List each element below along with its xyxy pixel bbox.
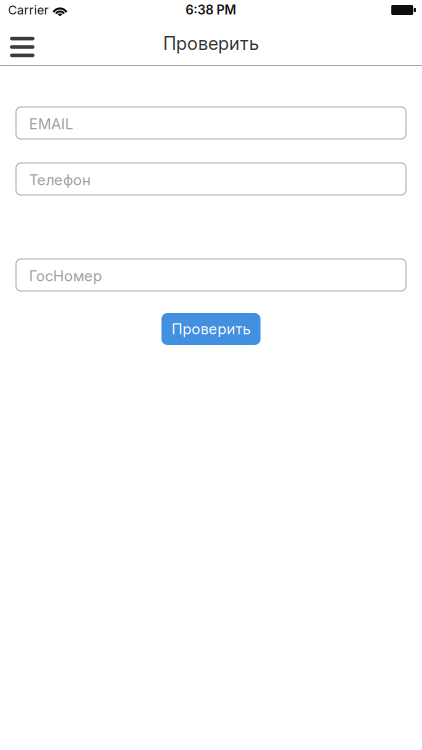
- button[interactable]: EMAIL: [16, 107, 406, 139]
- button[interactable]: Проверить: [161, 313, 260, 345]
- staticText: Телефон: [29, 171, 91, 189]
- staticText: Проверить: [171, 320, 250, 338]
- button[interactable]: ГосНомер: [16, 259, 406, 291]
- staticText: Carrier: [8, 3, 49, 17]
- button[interactable]: Menu: [0, 20, 46, 65]
- button[interactable]: Телефон: [16, 163, 406, 195]
- staticText: 6:38 PM: [185, 2, 236, 18]
- staticText: Проверить: [163, 33, 259, 54]
- staticText: ГосНомер: [29, 267, 102, 285]
- staticText: EMAIL: [29, 115, 73, 133]
